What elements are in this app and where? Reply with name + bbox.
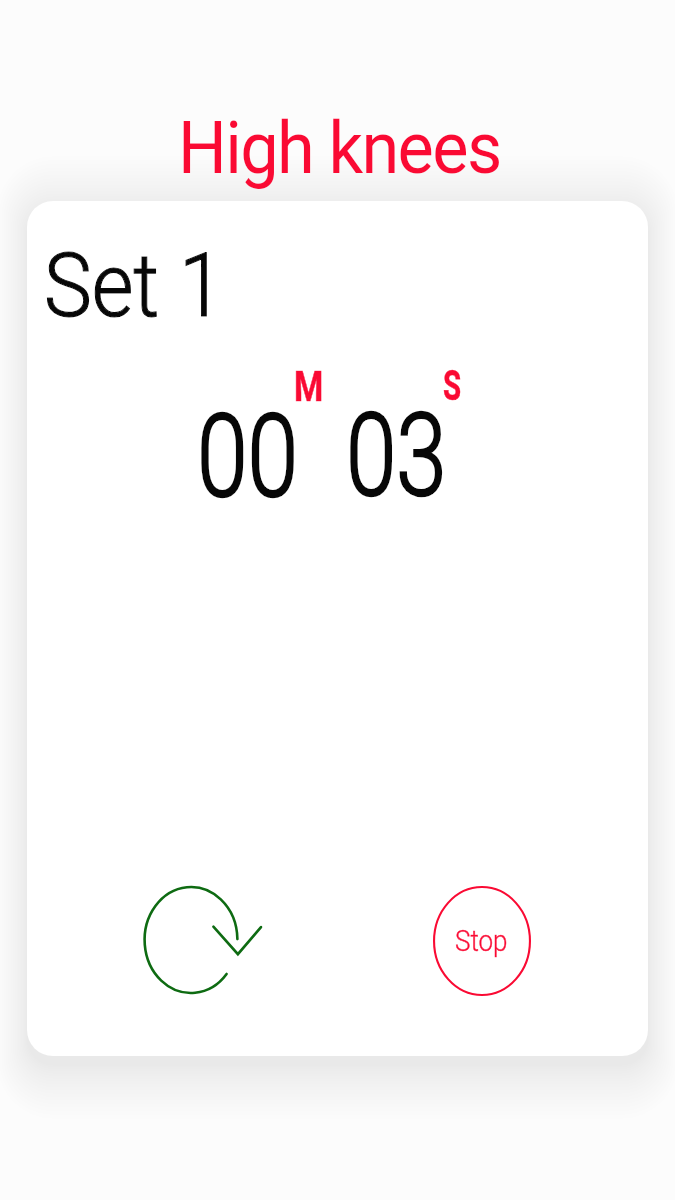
staticText: M bbox=[294, 362, 324, 411]
staticText: High knees bbox=[178, 106, 501, 190]
staticText: 03 bbox=[346, 388, 447, 523]
staticText: Stop bbox=[455, 924, 508, 958]
staticText: Set 1 bbox=[44, 233, 224, 337]
staticText: S bbox=[443, 360, 461, 410]
staticText: 00 bbox=[197, 389, 299, 524]
staticText: 00 bbox=[197, 389, 299, 524]
button[interactable]: Restart timer bbox=[140, 883, 268, 997]
staticText: Stop bbox=[455, 924, 508, 958]
staticText: S bbox=[443, 360, 461, 410]
button[interactable]: Stop bbox=[433, 886, 531, 996]
staticText: Set 1 bbox=[44, 233, 224, 337]
staticText: M bbox=[294, 362, 324, 411]
staticText: 03 bbox=[346, 388, 447, 523]
